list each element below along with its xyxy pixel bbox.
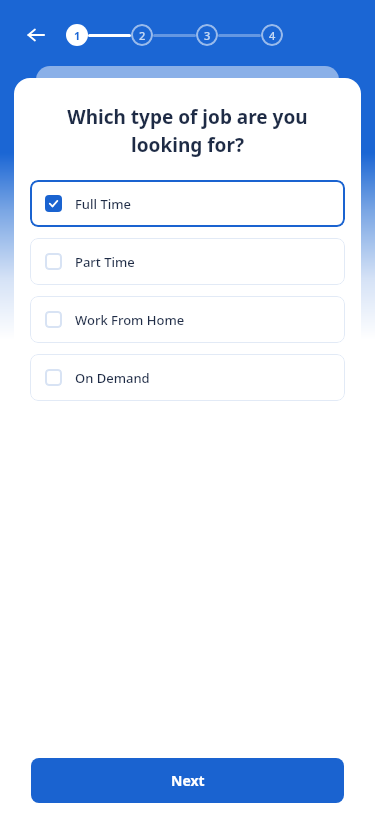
button[interactable]: 4 [261, 24, 283, 46]
button[interactable]: Back [20, 19, 52, 51]
button[interactable]: On Demand [30, 354, 345, 401]
button[interactable]: Full Time [30, 180, 345, 227]
button[interactable]: Next [31, 758, 344, 803]
staticText: Next [171, 771, 205, 790]
staticText: 1 [74, 28, 81, 43]
button[interactable]: Part Time [30, 238, 345, 285]
button[interactable]: Work From Home [30, 296, 345, 343]
button[interactable]: 2 [131, 24, 153, 46]
staticText: 4 [269, 28, 276, 43]
button[interactable]: 1 [66, 24, 88, 46]
staticText: Part Time [75, 253, 135, 271]
staticText: 2 [139, 28, 146, 43]
staticText: Which type of job are you looking for? [38, 104, 337, 158]
staticText: Full Time [75, 195, 132, 213]
staticText: On Demand [75, 369, 150, 387]
staticText: 3 [204, 28, 211, 43]
button[interactable]: 3 [196, 24, 218, 46]
staticText: Work From Home [75, 311, 185, 329]
